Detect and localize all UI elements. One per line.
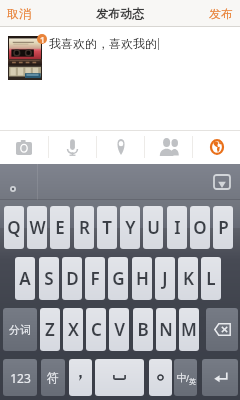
button[interactable]: C [86,308,106,351]
button[interactable]: Enter [202,359,238,396]
button[interactable]: J [155,257,175,300]
button[interactable]: Privacy [193,130,240,164]
staticText: H [136,267,149,290]
staticText: I [174,216,181,239]
staticText: 英 [189,377,196,386]
button[interactable]: V [109,308,129,351]
staticText: G [112,267,125,290]
button[interactable]: 取消 [4,3,34,24]
button[interactable]: Location [97,130,144,164]
button[interactable]: Friends [145,130,192,164]
staticText: T [102,216,112,239]
button[interactable]: L [201,257,221,300]
staticText: V [114,318,125,341]
button[interactable]: Camera [0,130,48,164]
staticText: 123 [10,370,31,386]
button[interactable]: Q [4,206,24,249]
button[interactable]: P [213,206,233,249]
staticText: B [137,318,149,341]
button[interactable]: A [15,257,35,300]
button[interactable]: Y [120,206,140,249]
staticText: L [206,267,216,290]
button[interactable]: B [133,308,153,351]
button[interactable]: N [156,308,176,351]
button[interactable]: Z [40,308,60,351]
button[interactable]: Hide keyboard [214,175,230,189]
staticText: S [44,267,54,290]
button[interactable]: Backspace [206,308,238,351]
button[interactable]: O [190,206,210,249]
button[interactable]: Chinese English toggle [174,359,197,396]
staticText: 符 [47,370,59,385]
button[interactable]: 分词 [3,308,37,351]
button[interactable]: 符 [41,359,65,396]
button[interactable]: K [178,257,198,300]
staticText: 我喜欢的，喜欢我的 [49,36,157,51]
staticText: 1 [40,34,45,44]
button[interactable]: 123 [3,359,37,396]
staticText: K [183,267,194,290]
button[interactable]: G [108,257,128,300]
staticText: J [162,267,168,290]
button[interactable]: R [74,206,94,249]
staticText: A [19,267,31,290]
button[interactable]: E [50,206,70,249]
staticText: P [218,216,229,239]
staticText: C [91,318,102,341]
button[interactable]: Remove attachment [37,34,47,44]
staticText: Y [125,216,136,239]
staticText: R [79,216,90,239]
button[interactable]: H [132,257,152,300]
staticText: / [186,373,189,384]
staticText: 分词 [9,323,31,337]
staticText: Z [45,318,55,341]
button[interactable]: Attached image [8,36,42,80]
staticText: M [181,318,197,341]
button[interactable]: Period [149,359,172,396]
staticText: 发布动态 [96,6,144,21]
button[interactable]: F [85,257,105,300]
button[interactable]: Voice [49,130,96,164]
button[interactable]: 发布 [206,3,236,24]
staticText: U [147,216,160,239]
button[interactable]: W [27,206,47,249]
button[interactable]: U [143,206,163,249]
button[interactable]: I [167,206,187,249]
staticText: 取消 [7,6,31,21]
button[interactable]: T [97,206,117,249]
staticText: O [193,216,207,239]
staticText: Q [7,216,21,239]
button[interactable]: D [62,257,82,300]
staticText: N [159,318,173,341]
button[interactable]: Space [95,359,144,396]
staticText: D [66,267,79,290]
button[interactable]: Comma [69,359,92,396]
staticText: 中 [177,371,187,384]
button[interactable]: X [63,308,83,351]
staticText: W [29,216,46,239]
staticText: 发布 [209,6,233,21]
staticText: E [55,216,65,239]
button[interactable]: M [179,308,199,351]
staticText: F [90,267,100,290]
staticText: X [68,318,79,341]
button[interactable]: S [39,257,59,300]
